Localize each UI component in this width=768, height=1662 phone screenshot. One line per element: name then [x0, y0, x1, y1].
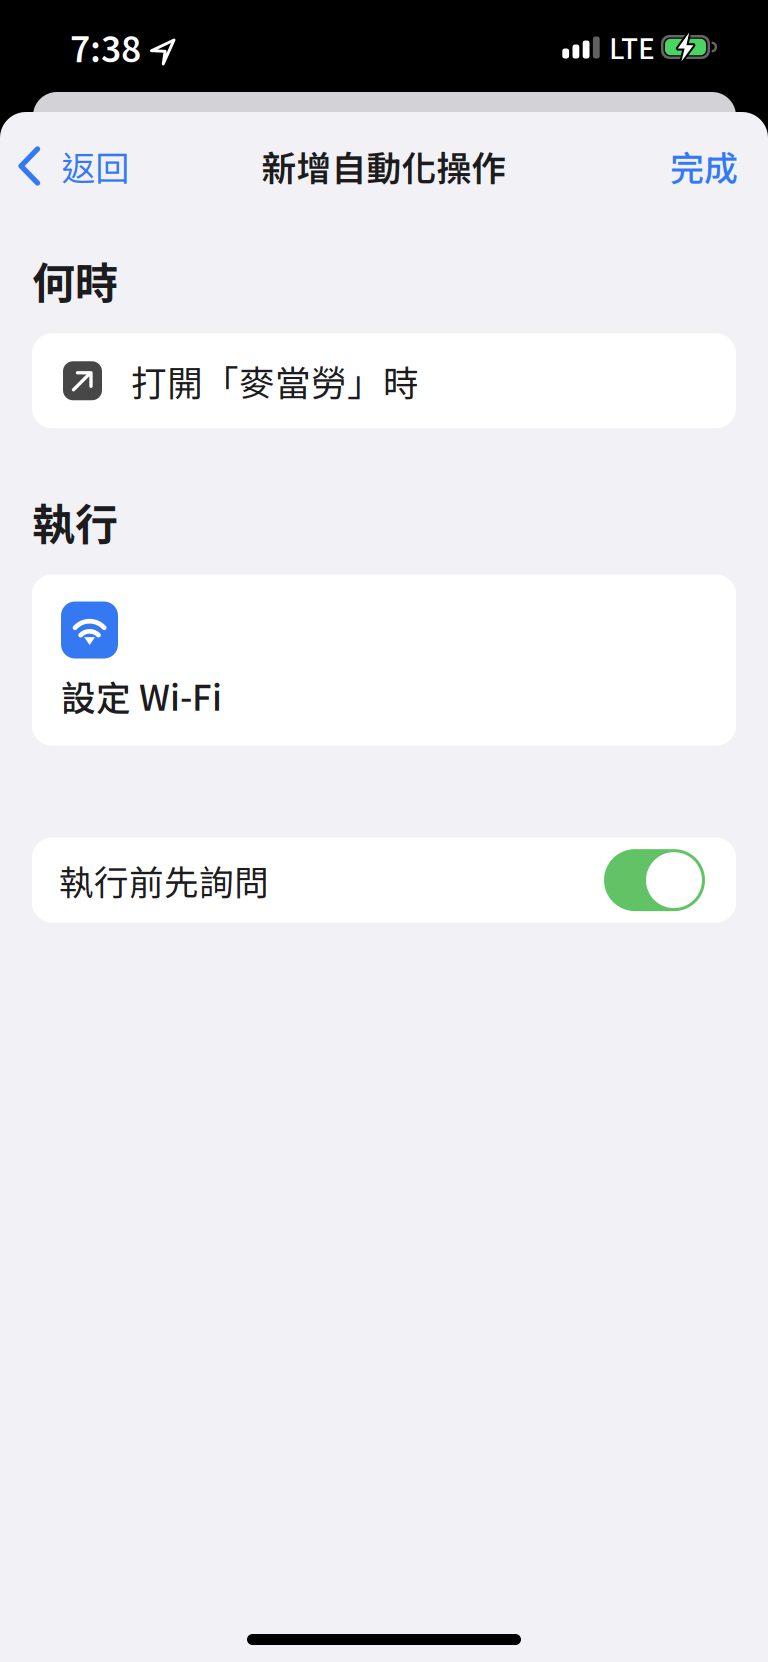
staticText: 完成	[670, 141, 738, 191]
button[interactable]: 完成	[650, 131, 768, 201]
staticText: LTE	[609, 27, 655, 67]
staticText: 7:38	[70, 22, 141, 72]
button[interactable]: 執行前先詢問	[32, 838, 736, 923]
staticText: 新增自動化操作	[261, 141, 506, 191]
staticText: 設定 Wi-Fi	[61, 670, 222, 721]
button[interactable]: 設定 Wi-Fi	[32, 574, 736, 746]
button[interactable]: 打開「麥當勞」時	[32, 333, 736, 428]
button[interactable]: 返回	[0, 131, 143, 201]
staticText: 何時	[32, 249, 118, 311]
staticText: 執行	[32, 490, 118, 553]
staticText: 執行前先詢問	[59, 855, 269, 905]
staticText: 打開「麥當勞」時	[131, 355, 419, 406]
staticText: 返回	[61, 141, 129, 191]
